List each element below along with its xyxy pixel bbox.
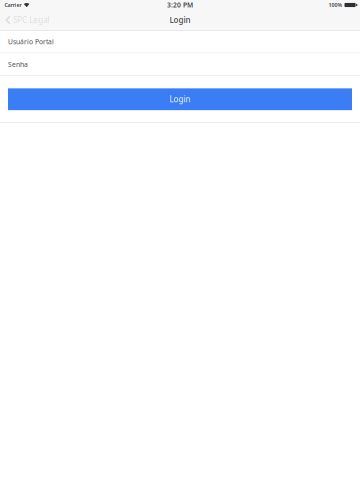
staticText: SPC Legal	[13, 15, 49, 25]
button[interactable]: Back to SPC Legal	[0, 10, 55, 30]
staticText: Usuário Portal	[8, 37, 54, 46]
button[interactable]: Senha	[0, 53, 360, 76]
staticText: Senha	[8, 60, 28, 69]
staticText: Carrier	[4, 1, 21, 9]
button[interactable]: Usuário Portal	[0, 31, 360, 53]
staticText: Login	[169, 15, 190, 25]
button[interactable]: Login	[0, 88, 360, 110]
staticText: Login	[169, 94, 190, 104]
staticText: 3:20 PM	[167, 1, 193, 9]
staticText: 100%	[328, 1, 342, 9]
